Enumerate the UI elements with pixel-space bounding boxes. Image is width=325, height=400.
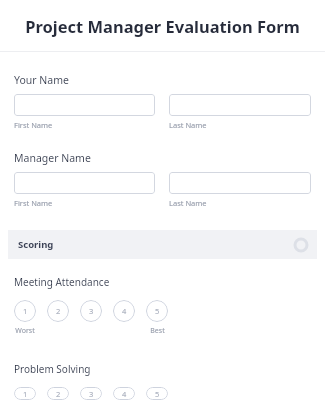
staticText: 2 xyxy=(56,389,61,399)
button[interactable]: Section options xyxy=(293,237,309,253)
button[interactable]: 3 xyxy=(80,300,102,322)
staticText: Problem Solving xyxy=(14,362,91,376)
button[interactable] xyxy=(14,172,155,194)
button[interactable]: Scoring xyxy=(8,230,317,259)
button[interactable]: 1 xyxy=(14,387,36,400)
staticText: Last Name xyxy=(169,198,207,208)
staticText: 5 xyxy=(155,389,160,399)
staticText: Last Name xyxy=(169,120,207,130)
button[interactable]: 4 xyxy=(113,300,135,322)
staticText: Project Manager Evaluation Form xyxy=(25,15,300,37)
staticText: 5 xyxy=(155,306,160,316)
button[interactable] xyxy=(14,94,155,116)
staticText: 1 xyxy=(23,389,28,399)
staticText: 3 xyxy=(89,389,94,399)
staticText: Manager Name xyxy=(14,151,91,165)
staticText: Your Name xyxy=(14,73,69,87)
staticText: 1 xyxy=(23,306,28,316)
staticText: First Name xyxy=(14,120,53,130)
staticText: 2 xyxy=(56,306,61,316)
staticText: First Name xyxy=(14,198,53,208)
staticText: 4 xyxy=(122,306,127,316)
button[interactable]: 1 xyxy=(14,300,36,322)
staticText: 3 xyxy=(89,306,94,316)
button[interactable]: 2 xyxy=(47,300,69,322)
staticText: Meeting Attendance xyxy=(14,275,110,289)
button[interactable]: 5 xyxy=(146,387,168,400)
staticText: Best xyxy=(150,326,165,336)
button[interactable] xyxy=(169,94,311,116)
staticText: Scoring xyxy=(18,238,54,251)
button[interactable] xyxy=(169,172,311,194)
button[interactable]: 5 xyxy=(146,300,168,322)
staticText: Worst xyxy=(15,326,35,336)
button[interactable]: 3 xyxy=(80,387,102,400)
button[interactable]: 2 xyxy=(47,387,69,400)
staticText: 4 xyxy=(122,389,127,399)
button[interactable]: 4 xyxy=(113,387,135,400)
